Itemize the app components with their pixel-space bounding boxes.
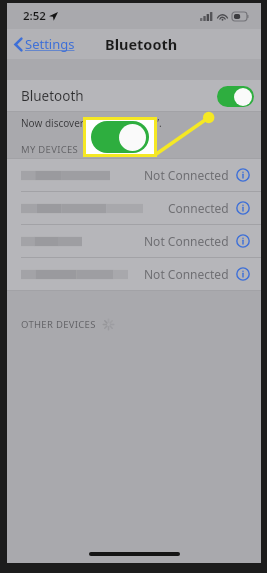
button[interactable]: Bluetooth [7,80,261,112]
button[interactable]: Not Connected [7,159,261,191]
staticText: Now discoverable as “iPhone”. [21,116,162,130]
staticText: Bluetooth [105,34,178,54]
button[interactable]: More Info [236,234,250,248]
staticText: OTHER DEVICES [21,318,96,331]
button[interactable]: More Info [236,201,250,215]
staticText: Bluetooth [21,87,84,105]
staticText: Not Connected [144,167,229,183]
staticText: Not Connected [144,233,229,249]
button[interactable]: More Info [236,168,250,182]
button[interactable]: Bluetooth on [217,86,254,107]
button[interactable]: More Info [236,267,250,281]
staticText: 2:52 [23,8,46,24]
staticText: Not Connected [144,266,229,282]
button[interactable]: Connected [7,192,261,224]
staticText: MY DEVICES [21,143,79,156]
button[interactable]: Settings [7,31,83,57]
staticText: Connected [168,200,229,216]
button[interactable]: Not Connected [7,258,261,290]
button[interactable]: Not Connected [7,225,261,257]
staticText: Settings [25,35,75,53]
